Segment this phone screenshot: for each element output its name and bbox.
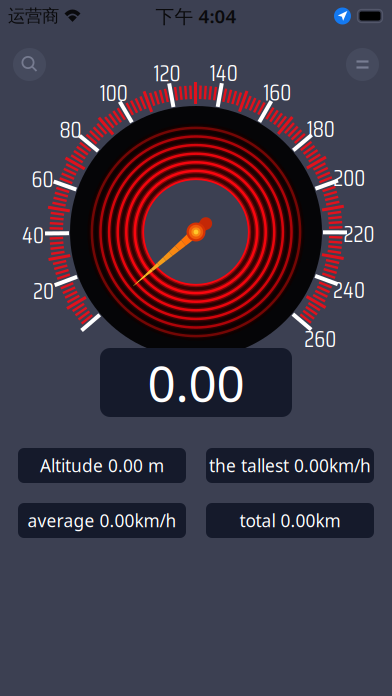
staticText: 200 — [333, 160, 365, 196]
staticText: 140 — [210, 55, 238, 91]
staticText: 80 — [59, 112, 81, 148]
staticText: 160 — [263, 75, 291, 110]
staticText: total 0.00km — [239, 509, 340, 532]
button[interactable]: average 0.00km/h — [18, 503, 186, 538]
staticText: 60 — [31, 161, 53, 197]
staticText: 260 — [304, 321, 336, 357]
staticText: 100 — [100, 75, 128, 111]
staticText: 240 — [333, 272, 365, 308]
button[interactable]: the tallest 0.00km/h — [206, 448, 374, 483]
staticText: 220 — [343, 216, 374, 252]
staticText: 运营商 — [8, 5, 59, 27]
staticText: the tallest 0.00km/h — [209, 454, 371, 477]
staticText: 180 — [307, 111, 335, 147]
button[interactable]: Menu — [346, 48, 379, 81]
staticText: 120 — [153, 56, 180, 91]
staticText: 下午 4:04 — [155, 4, 236, 28]
staticText: 0.00 — [147, 350, 244, 415]
button[interactable]: Altitude 0.00 m — [18, 448, 186, 483]
staticText: 40 — [22, 217, 44, 253]
button[interactable]: Search — [13, 48, 46, 81]
button[interactable]: total 0.00km — [206, 503, 374, 538]
staticText: average 0.00km/h — [27, 509, 176, 532]
staticText: Altitude 0.00 m — [40, 454, 164, 477]
staticText: 20 — [33, 273, 54, 309]
